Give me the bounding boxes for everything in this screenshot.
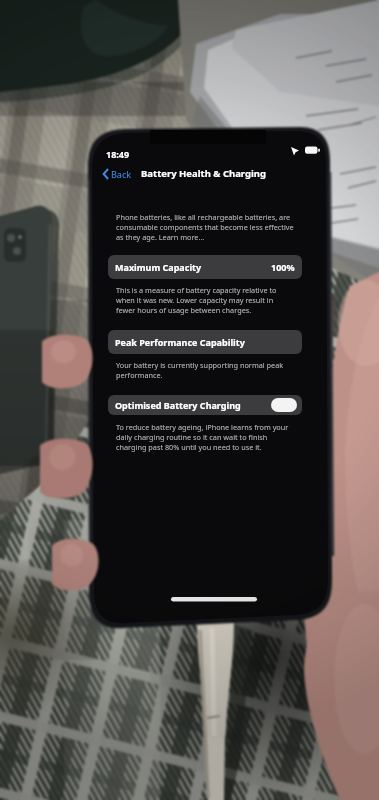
- staticText: To reduce battery ageing, iPhone learns …: [116, 422, 294, 452]
- staticText: This is a measure of battery capacity re…: [116, 285, 288, 315]
- staticText: Your battery is currently supporting nor…: [116, 360, 300, 380]
- staticText: 100%: [271, 261, 295, 273]
- button[interactable]: Optimised Battery Charging toggle: [271, 398, 297, 412]
- staticText: Back: [111, 168, 132, 180]
- staticText: Battery Health & Charging: [141, 167, 267, 180]
- button[interactable]: Optimised Battery Charging: [108, 395, 302, 415]
- button[interactable]: Back: [101, 166, 134, 182]
- staticText: Maximum Capacity: [115, 261, 202, 273]
- staticText: 18:49: [106, 148, 130, 160]
- staticText: Phone batteries, like all rechargeable b…: [116, 212, 300, 242]
- button[interactable]: Maximum Capacity: [108, 255, 302, 279]
- staticText: Peak Performance Capability: [115, 336, 245, 348]
- staticText: Optimised Battery Charging: [115, 399, 241, 411]
- button[interactable]: Peak Performance Capability: [108, 330, 302, 354]
